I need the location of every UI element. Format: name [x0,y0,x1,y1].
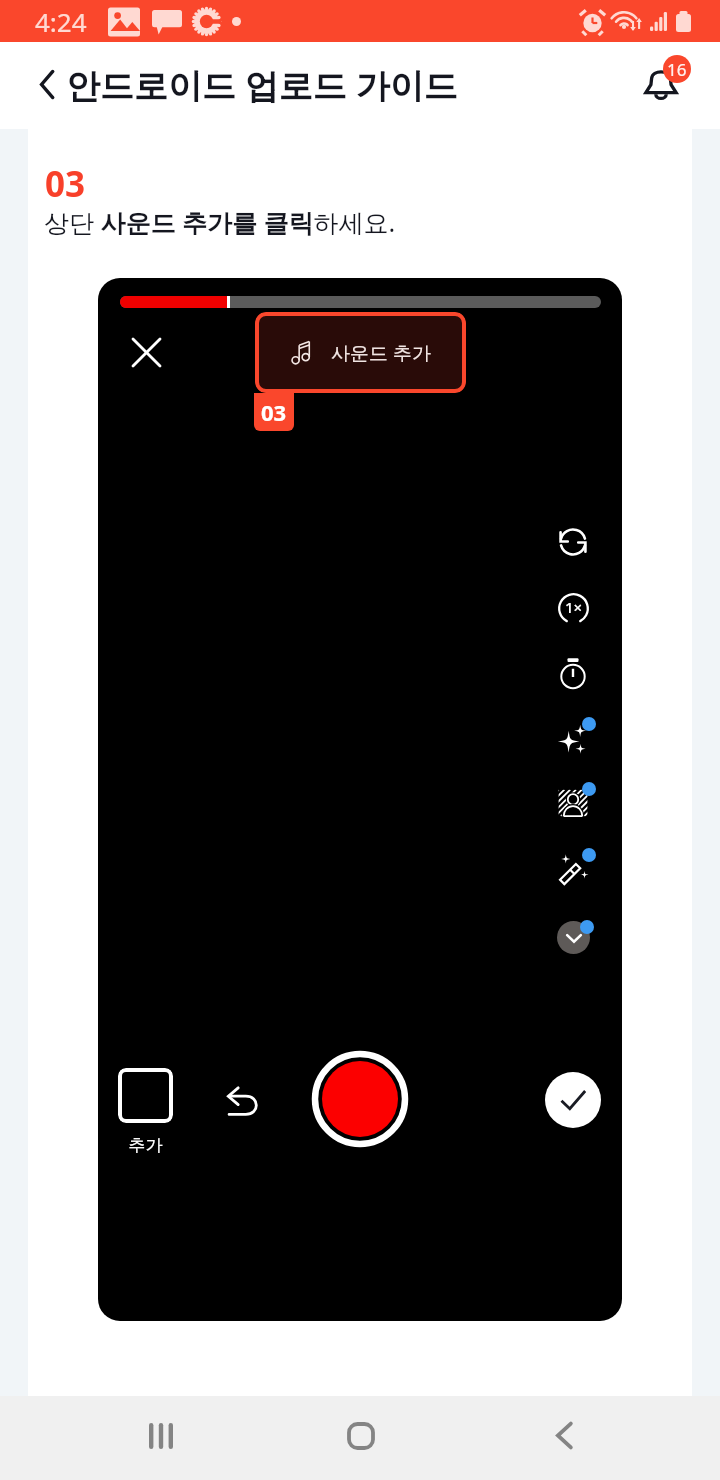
button[interactable]: Done [545,1072,601,1128]
button[interactable]: Home [331,1406,390,1465]
button[interactable]: Back [23,60,71,108]
button[interactable]: Add clip [118,1068,173,1123]
staticText: 안드로이드 업로드 가이드 [66,62,458,108]
staticText: 4:24 [35,4,87,39]
button[interactable]: Effects [549,714,597,762]
button[interactable]: Recents [131,1406,190,1465]
button[interactable]: Notifications [632,58,690,116]
button[interactable]: Playback speed [549,584,597,632]
button[interactable]: 사운드 추가 [255,312,466,393]
button[interactable]: Beauty [549,845,597,893]
button[interactable]: Timer [549,650,597,698]
staticText: 03 [261,397,287,427]
button[interactable]: More options [557,921,590,954]
staticText: 16 [667,58,687,81]
staticText: 03 [45,160,86,208]
button[interactable]: Back [534,1406,593,1465]
staticText: 상단 사운드 추가를 클릭하세요. [44,205,396,239]
staticText: 추가 [123,1135,168,1156]
button[interactable]: Flip camera [549,518,597,566]
button[interactable]: Undo [218,1076,266,1124]
staticText: 사운드 추가 [331,340,431,366]
staticText: 1× [565,597,583,617]
button[interactable]: Close [122,328,170,376]
button[interactable]: Record [312,1051,408,1147]
button[interactable]: Filters [549,779,597,827]
